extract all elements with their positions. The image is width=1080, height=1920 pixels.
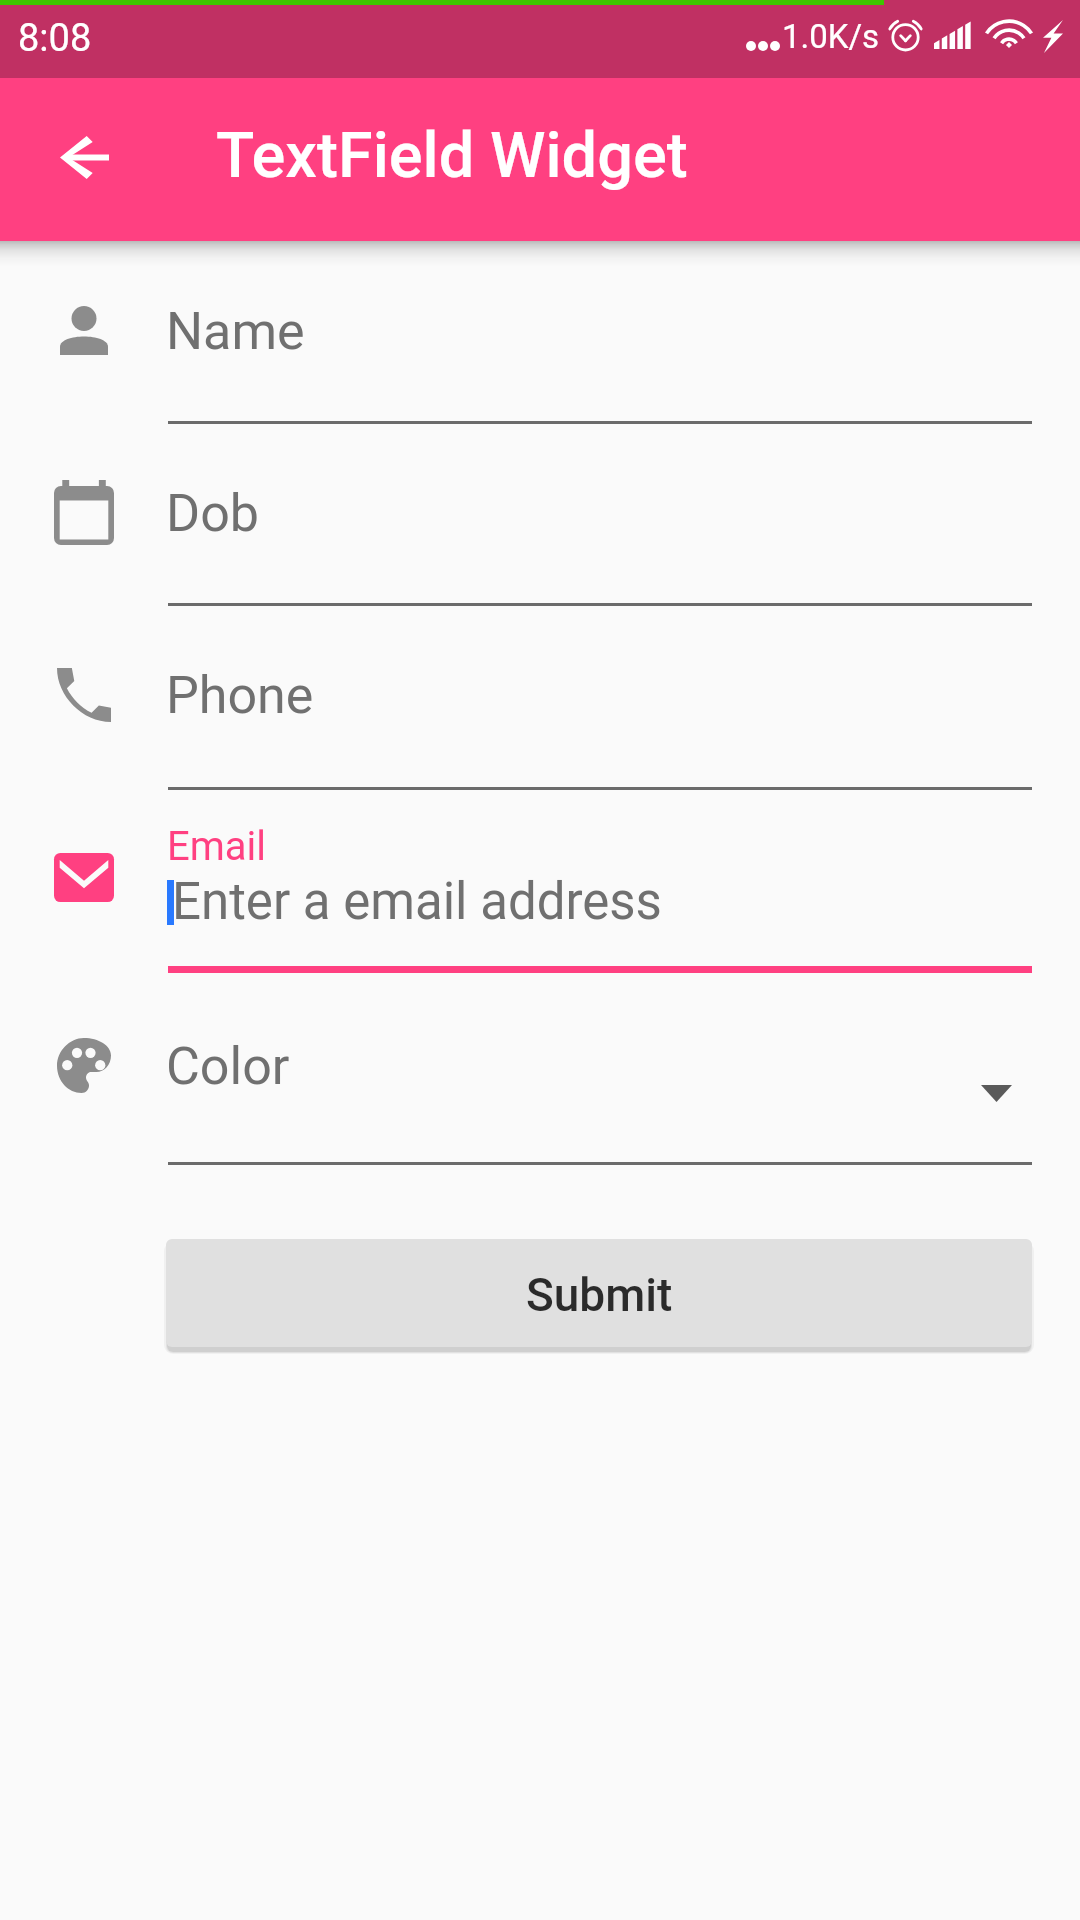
staticText: Dob bbox=[166, 483, 259, 544]
staticText: Color bbox=[166, 1036, 290, 1097]
button[interactable]: Submit bbox=[166, 1239, 1032, 1347]
staticText: Enter a email address bbox=[172, 872, 662, 932]
button[interactable]: Name bbox=[0, 256, 1080, 437]
button[interactable]: Back bbox=[36, 109, 132, 205]
button[interactable]: Dob bbox=[0, 438, 1080, 619]
staticText: Name bbox=[166, 301, 305, 362]
staticText: 1.0K/s bbox=[782, 17, 880, 56]
staticText: Submit bbox=[526, 1268, 673, 1322]
staticText: Phone bbox=[166, 665, 314, 726]
button[interactable]: Phone bbox=[0, 620, 1080, 803]
button[interactable]: Color bbox=[0, 1012, 1080, 1198]
staticText: TextField Widget bbox=[216, 119, 688, 193]
staticText: 8:08 bbox=[18, 16, 92, 61]
button[interactable]: Email bbox=[0, 818, 1080, 993]
staticText: Email bbox=[167, 823, 267, 870]
